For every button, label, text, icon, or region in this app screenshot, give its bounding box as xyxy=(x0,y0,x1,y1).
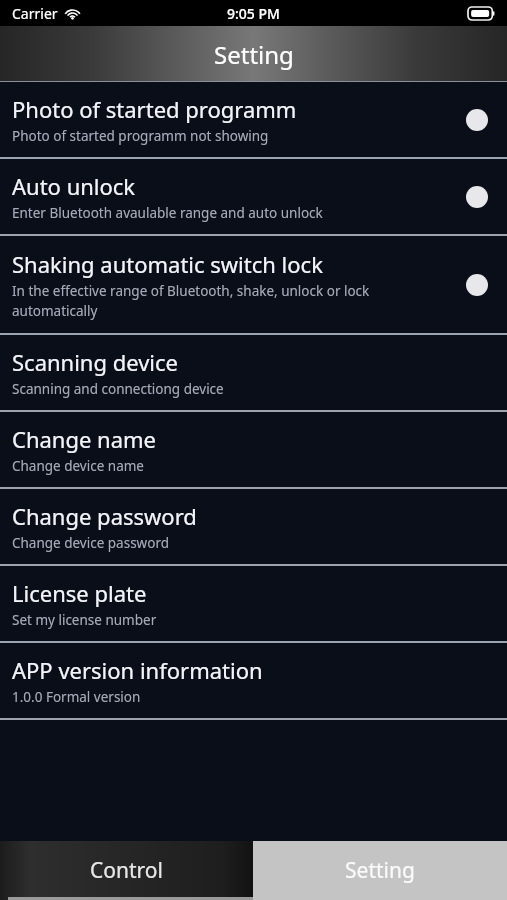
button[interactable]: Control xyxy=(0,841,253,900)
button[interactable]: Scanning device xyxy=(0,335,507,410)
staticText: Photo of started programm not showing xyxy=(12,127,269,145)
button[interactable]: APP version information xyxy=(0,643,507,718)
staticText: Scanning and connectiong device xyxy=(12,380,224,398)
button[interactable]: Auto unlock xyxy=(0,159,507,234)
staticText: Change device password xyxy=(12,534,170,552)
staticText: Setting xyxy=(214,38,294,71)
button[interactable]: Toggle Shaking automatic switch lock xyxy=(466,274,488,296)
button[interactable]: License plate xyxy=(0,566,507,641)
staticText: 1.0.0 Formal version xyxy=(12,688,141,706)
button[interactable]: Setting xyxy=(253,841,507,900)
button[interactable]: Photo of started programm xyxy=(0,82,507,157)
staticText: Change password xyxy=(12,501,197,531)
button[interactable]: Toggle Photo of started programm xyxy=(466,109,488,131)
staticText: Change device name xyxy=(12,457,144,475)
staticText: Photo of started programm xyxy=(12,94,297,124)
staticText: Control xyxy=(90,856,163,885)
button[interactable]: Toggle Auto unlock xyxy=(466,186,488,208)
staticText: Enter Bluetooth avaulable range and auto… xyxy=(12,204,323,222)
staticText: Setting xyxy=(345,856,415,885)
staticText: Set my license number xyxy=(12,611,157,629)
staticText: License plate xyxy=(12,578,147,608)
staticText: 9:05 PM xyxy=(227,4,280,23)
staticText: APP version information xyxy=(12,655,263,685)
staticText: In the effective range of Bluetooth, sha… xyxy=(12,282,370,320)
staticText: Scanning device xyxy=(12,347,179,377)
staticText: Change name xyxy=(12,424,157,454)
button[interactable]: Change name xyxy=(0,412,507,487)
staticText: Auto unlock xyxy=(12,171,136,201)
button[interactable]: Change password xyxy=(0,489,507,564)
staticText: Carrier xyxy=(12,4,58,23)
staticText: Shaking automatic switch lock xyxy=(12,249,323,279)
button[interactable]: Shaking automatic switch lock xyxy=(0,236,507,333)
